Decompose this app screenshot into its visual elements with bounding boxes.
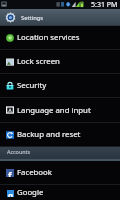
button[interactable]: Backup and reset	[0, 123, 120, 147]
staticText: Backup and reset	[17, 129, 81, 140]
staticText: Facebook	[17, 167, 52, 178]
staticText: Settings	[21, 14, 44, 22]
button[interactable]: Security	[0, 74, 120, 98]
staticText: Lock screen	[17, 56, 60, 67]
staticText: Accounts	[7, 148, 31, 155]
staticText: Location services	[17, 32, 80, 43]
button[interactable]: g	[0, 185, 120, 200]
button[interactable]: Language and input	[0, 98, 120, 123]
button[interactable]: Location services	[0, 26, 120, 50]
button[interactable]: f	[0, 161, 120, 185]
button[interactable]: Lock screen	[0, 50, 120, 74]
staticText: Security	[17, 80, 47, 91]
staticText: 5:31 PM	[91, 0, 118, 9]
staticText: g	[8, 190, 14, 197]
staticText: Language and input	[17, 105, 91, 116]
staticText: Google	[17, 187, 44, 198]
staticText: f	[8, 169, 12, 177]
